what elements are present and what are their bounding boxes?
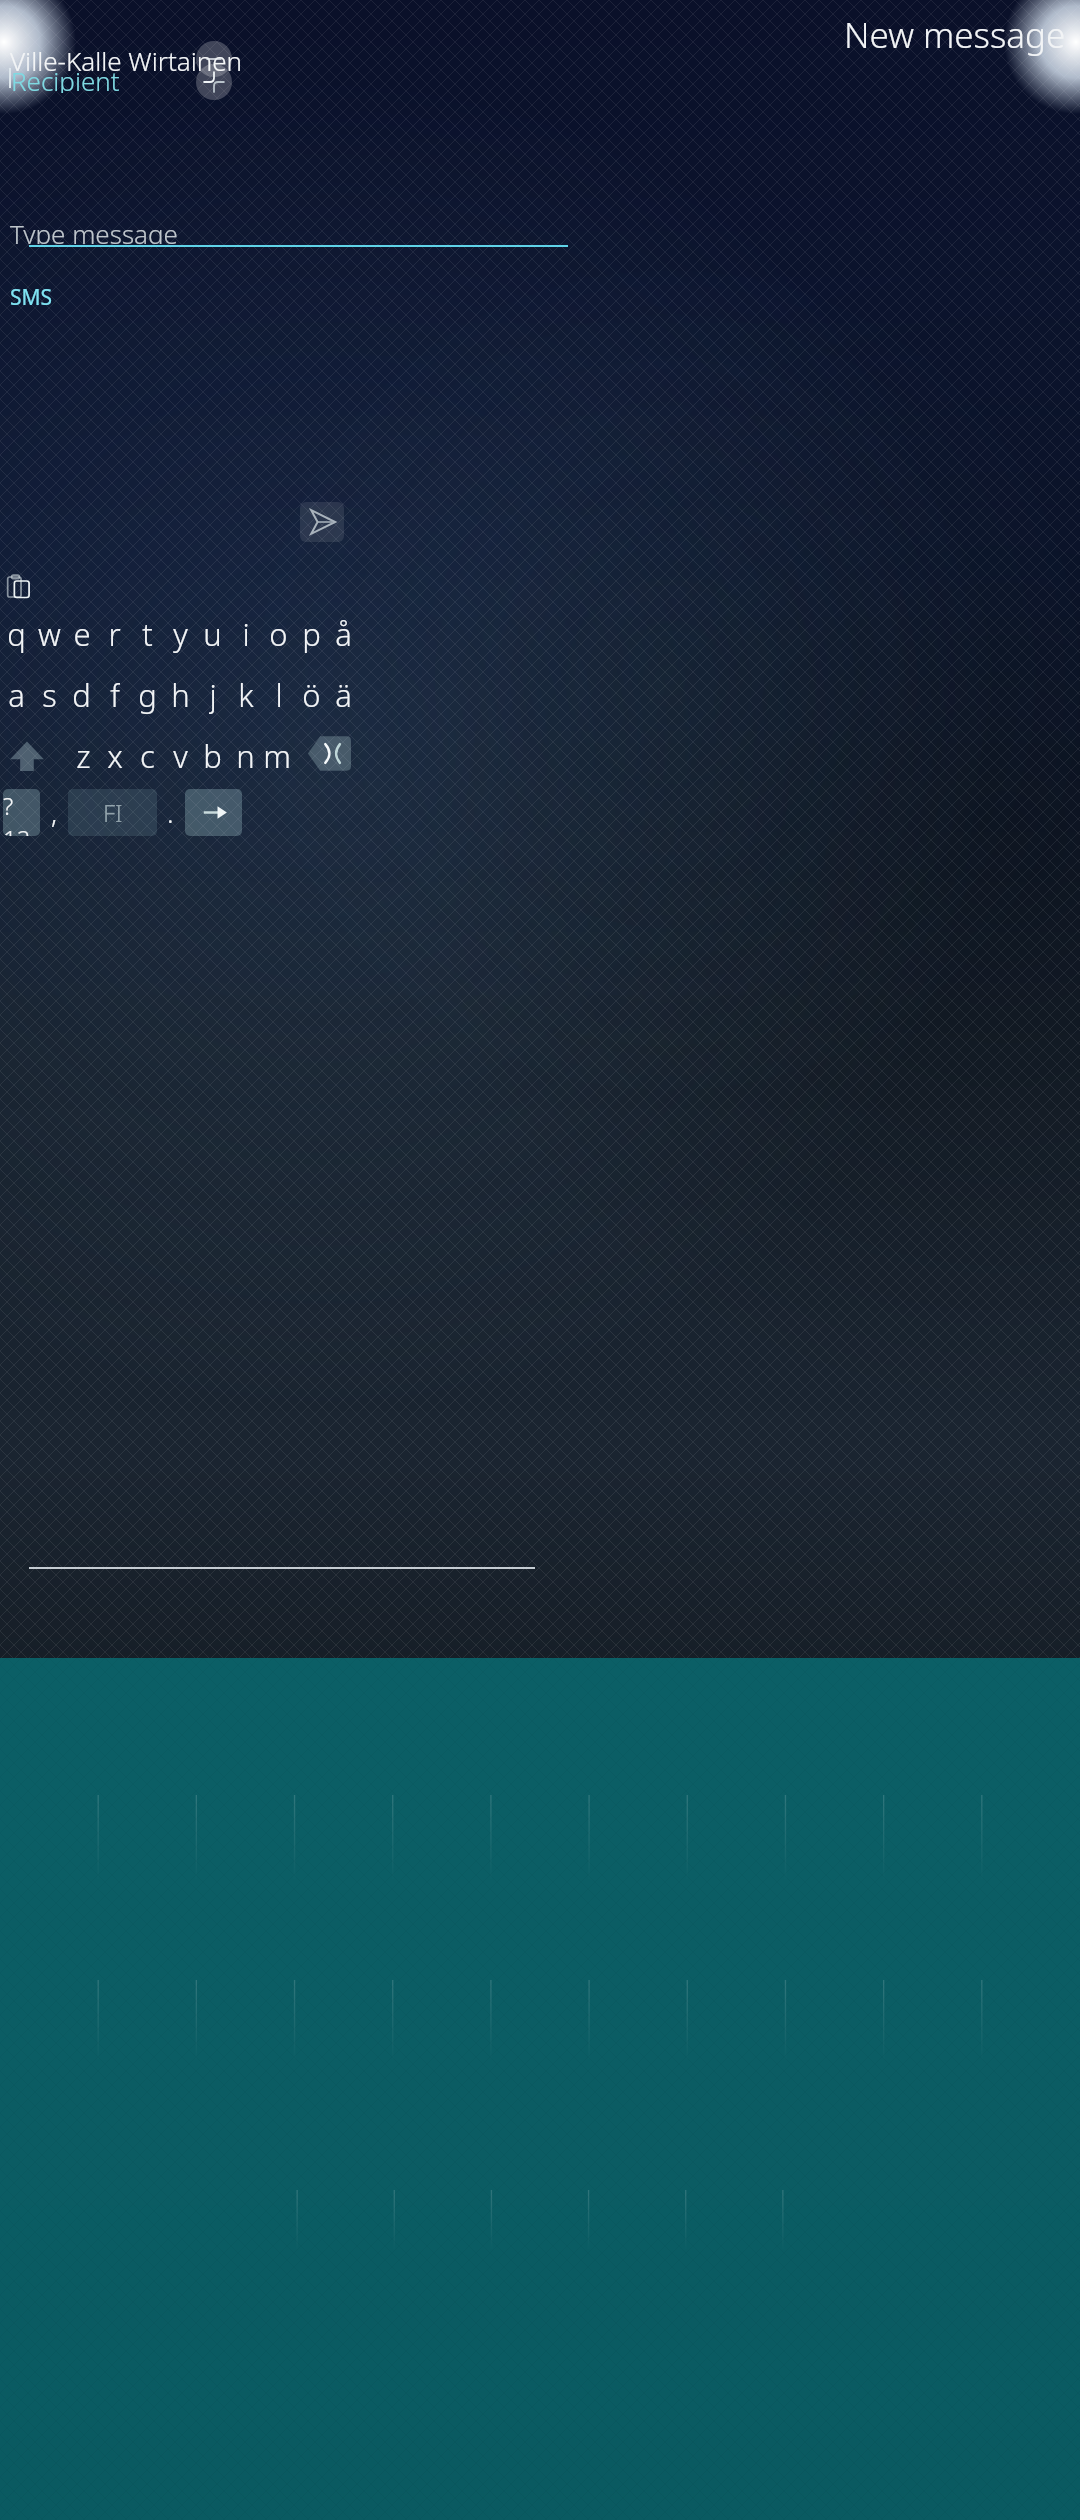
staticText: o [269, 613, 288, 654]
button[interactable]: Enter [185, 789, 242, 836]
button[interactable]: g [131, 674, 164, 715]
staticText: i [242, 613, 250, 654]
staticText: e [73, 613, 91, 654]
staticText: ä [335, 674, 352, 715]
staticText: SMS [10, 283, 53, 305]
staticText: j [209, 674, 217, 715]
staticText: å [335, 613, 352, 654]
staticText: b [203, 735, 222, 776]
button[interactable]: t [131, 613, 164, 654]
staticText: Ville-Kalle Wirtainen [10, 43, 243, 78]
button[interactable]: Space [68, 789, 157, 836]
button[interactable]: k [229, 674, 262, 715]
staticText: v [173, 735, 188, 776]
button[interactable]: m [261, 735, 293, 776]
staticText: ö [302, 674, 321, 715]
button[interactable]: f [98, 674, 131, 715]
staticText: s [42, 674, 57, 715]
button[interactable]: ö [295, 674, 328, 715]
staticText: d [72, 674, 91, 715]
staticText: ?123 [3, 789, 40, 836]
button[interactable]: , [43, 789, 66, 836]
staticText: a [8, 674, 25, 715]
staticText: w [38, 613, 61, 654]
staticText: Recipient [11, 63, 120, 93]
button[interactable]: Shift [3, 732, 50, 779]
staticText: x [107, 735, 123, 776]
button[interactable]: h [164, 674, 197, 715]
button[interactable]: q [0, 613, 33, 654]
staticText: n [236, 735, 255, 776]
button[interactable]: l [262, 674, 295, 715]
staticText: h [171, 674, 190, 715]
button[interactable]: n [229, 735, 261, 776]
button[interactable]: r [98, 613, 131, 654]
button[interactable]: Remove recipient [196, 41, 232, 77]
button[interactable]: Recipient [0, 63, 572, 93]
button[interactable]: o [262, 613, 295, 654]
button[interactable]: ?123 [3, 789, 40, 836]
button[interactable]: s [33, 674, 66, 715]
staticText: p [302, 613, 321, 654]
staticText: q [7, 613, 26, 654]
button[interactable]: i [229, 613, 262, 654]
button[interactable]: a [0, 674, 33, 715]
staticText: u [203, 613, 222, 654]
button[interactable]: d [65, 674, 98, 715]
button[interactable]: Backspace [307, 734, 351, 773]
staticText: y [173, 613, 188, 654]
button[interactable]: Clipboard [7, 574, 30, 599]
staticText: c [140, 735, 155, 776]
staticText: New message [844, 11, 1066, 59]
button[interactable]: Send message [300, 502, 344, 542]
button[interactable]: p [295, 613, 328, 654]
button[interactable]: z [67, 735, 99, 776]
button[interactable]: u [196, 613, 229, 654]
staticText: Type message [10, 216, 178, 244]
button[interactable]: c [131, 735, 163, 776]
staticText: . [167, 794, 174, 831]
button[interactable]: x [99, 735, 131, 776]
staticText: r [108, 613, 121, 654]
button[interactable]: ä [327, 674, 360, 715]
button[interactable]: v [164, 735, 196, 776]
staticText: l [275, 674, 283, 715]
staticText: t [142, 613, 153, 654]
staticText: g [138, 674, 157, 715]
button[interactable]: y [164, 613, 197, 654]
staticText: FI [103, 796, 123, 829]
button[interactable]: b [196, 735, 228, 776]
button[interactable]: e [65, 613, 98, 654]
staticText: z [76, 735, 91, 776]
button[interactable]: Type message [0, 216, 540, 244]
button[interactable]: j [196, 674, 229, 715]
button[interactable]: . [159, 789, 182, 836]
staticText: k [238, 674, 254, 715]
button[interactable]: w [33, 613, 66, 654]
staticText: f [110, 674, 120, 715]
button[interactable]: Ville-Kalle Wirtainen [0, 40, 886, 80]
button[interactable]: Add from contacts [196, 64, 232, 100]
staticText: , [51, 794, 58, 831]
staticText: m [263, 735, 291, 776]
button[interactable]: å [327, 613, 360, 654]
button[interactable]: SMS [0, 283, 53, 305]
